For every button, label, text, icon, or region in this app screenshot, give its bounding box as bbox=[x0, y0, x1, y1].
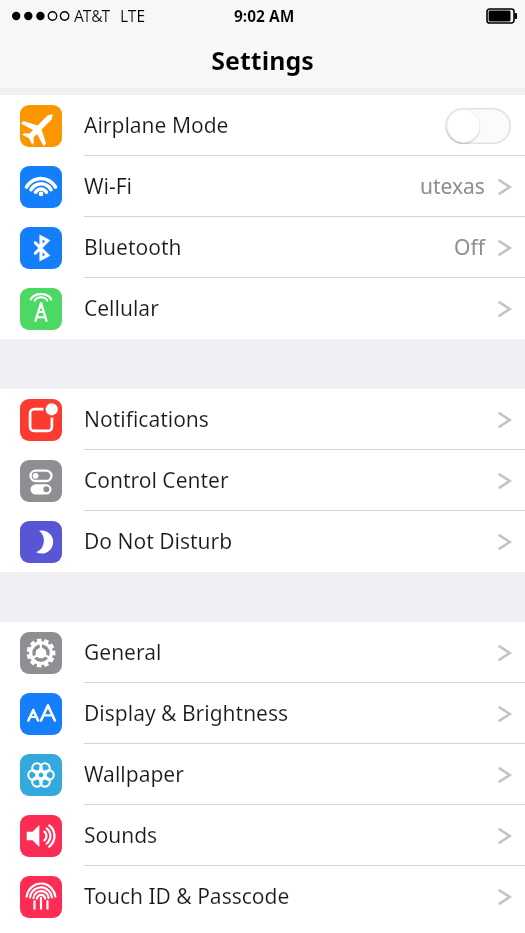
button[interactable]: Cellular bbox=[0, 278, 525, 339]
staticText: Sounds bbox=[84, 821, 158, 850]
staticText: Wi-Fi bbox=[84, 172, 133, 201]
staticText: Settings bbox=[211, 43, 314, 77]
staticText: General bbox=[84, 638, 162, 667]
staticText: Cellular bbox=[84, 294, 159, 323]
button[interactable]: Touch ID & Passcode bbox=[0, 866, 525, 927]
staticText: utexas bbox=[420, 172, 485, 201]
staticText: Display & Brightness bbox=[84, 699, 289, 728]
button[interactable]: Notifications bbox=[0, 389, 525, 450]
button[interactable]: Control Center bbox=[0, 450, 525, 511]
button[interactable]: Sounds bbox=[0, 805, 525, 866]
staticText: Do Not Disturb bbox=[84, 527, 233, 556]
staticText: AT&T bbox=[74, 5, 111, 26]
staticText: Notifications bbox=[84, 405, 209, 434]
staticText: Control Center bbox=[84, 466, 229, 495]
staticText: Touch ID & Passcode bbox=[84, 882, 290, 911]
staticText: Bluetooth bbox=[84, 233, 182, 262]
staticText: Airplane Mode bbox=[84, 111, 229, 140]
button[interactable]: Wi-Fi bbox=[0, 156, 525, 217]
button[interactable]: Do Not Disturb bbox=[0, 511, 525, 572]
button[interactable]: Airplane Mode bbox=[0, 95, 525, 156]
button[interactable]: Bluetooth bbox=[0, 217, 525, 278]
button[interactable]: General bbox=[0, 622, 525, 683]
button[interactable]: Display & Brightness bbox=[0, 683, 525, 744]
staticText: Wallpaper bbox=[84, 760, 184, 789]
button[interactable]: Wallpaper bbox=[0, 744, 525, 805]
staticText: LTE bbox=[120, 5, 146, 26]
button[interactable]: Airplane Mode toggle bbox=[445, 108, 511, 144]
staticText: Off bbox=[454, 233, 485, 262]
staticText: 9:02 AM bbox=[234, 5, 295, 26]
